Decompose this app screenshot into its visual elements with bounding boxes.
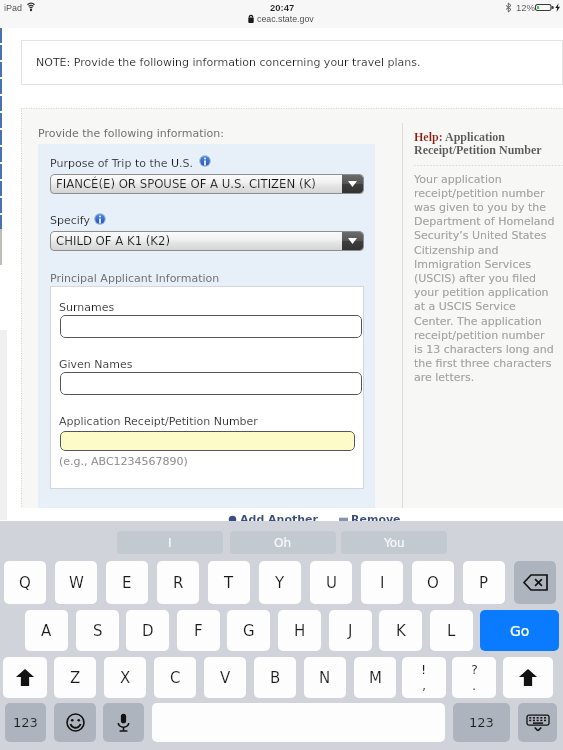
button[interactable]: A: [25, 610, 68, 651]
staticText: Application Receipt/Petition Number: [59, 415, 258, 428]
button[interactable]: S: [76, 610, 119, 651]
staticText: 20:47: [270, 2, 295, 13]
staticText: O: [427, 574, 439, 591]
button[interactable]: Y: [259, 561, 301, 604]
staticText: Surnames: [59, 301, 115, 314]
staticText: Your application: [414, 173, 502, 186]
button[interactable]: H: [278, 610, 321, 651]
button[interactable]: Emoji: [54, 703, 96, 742]
staticText: Specify: [50, 214, 91, 227]
staticText: Oh: [274, 536, 292, 550]
staticText: Provide the following information:: [38, 127, 224, 140]
staticText: D: [142, 622, 154, 639]
button[interactable]: P: [463, 561, 505, 604]
staticText: E: [122, 574, 132, 591]
button[interactable]: F: [177, 610, 220, 651]
staticText: Immigration Services: [414, 258, 531, 271]
staticText: at a USCIS Service: [414, 300, 516, 313]
staticText: CHILD OF A K1 (K2): [56, 234, 171, 248]
staticText: W: [69, 574, 84, 591]
staticText: receipt/petition number: [414, 329, 545, 342]
button[interactable]: NOTE: Provide the following information …: [21, 40, 563, 85]
button[interactable]: [60, 315, 362, 338]
button[interactable]: O: [412, 561, 454, 604]
button[interactable]: Question mark or period: [452, 657, 496, 698]
button[interactable]: U: [310, 561, 352, 604]
staticText: P: [479, 574, 489, 591]
button[interactable]: Backspace: [514, 561, 556, 604]
button[interactable]: Shift: [3, 657, 47, 698]
staticText: was given to you by the: [414, 201, 547, 214]
staticText: You: [384, 536, 405, 550]
button[interactable]: CHILD OF A K1 (K2): [50, 231, 364, 251]
button[interactable]: Go: [480, 610, 559, 651]
button[interactable]: C: [154, 657, 196, 698]
staticText: M: [369, 669, 382, 686]
staticText: is 13 characters long and: [414, 343, 554, 356]
staticText: ,: [422, 678, 427, 693]
staticText: Purpose of Trip to the U.S.: [50, 157, 194, 170]
button[interactable]: N: [304, 657, 346, 698]
staticText: F: [194, 622, 203, 639]
staticText: U: [326, 574, 337, 591]
staticText: .: [472, 678, 477, 693]
button[interactable]: E: [106, 561, 148, 604]
staticText: 123: [13, 715, 38, 730]
button[interactable]: Numbers: [5, 703, 46, 742]
button[interactable]: X: [104, 657, 146, 698]
staticText: NOTE: Provide the following information …: [36, 56, 421, 69]
staticText: K: [396, 622, 406, 639]
staticText: X: [120, 669, 131, 686]
button[interactable]: B: [254, 657, 296, 698]
button[interactable]: Dictate: [103, 703, 144, 742]
staticText: !: [421, 662, 427, 677]
button[interactable]: L: [430, 610, 473, 651]
staticText: 12%: [516, 2, 536, 13]
button[interactable]: W: [55, 561, 97, 604]
staticText: Department of Homeland: [414, 215, 555, 228]
button[interactable]: Shift: [503, 657, 553, 698]
staticText: 123: [469, 715, 494, 730]
button[interactable]: [60, 372, 362, 395]
staticText: G: [243, 622, 255, 639]
button[interactable]: K: [379, 610, 422, 651]
button[interactable]: Z: [54, 657, 96, 698]
staticText: I: [380, 574, 385, 591]
staticText: Add Another: [240, 513, 318, 526]
staticText: the first three characters: [414, 357, 552, 370]
staticText: S: [93, 622, 103, 639]
staticText: Remove: [351, 513, 401, 526]
staticText: N: [319, 669, 331, 686]
staticText: ceac.state.gov: [257, 14, 314, 24]
staticText: your petition application: [414, 286, 549, 299]
button[interactable]: You: [341, 531, 447, 554]
button[interactable]: T: [208, 561, 250, 604]
button[interactable]: J: [329, 610, 372, 651]
staticText: Q: [19, 574, 31, 591]
button[interactable]: Exclamation or comma: [402, 657, 446, 698]
staticText: Security’s United States: [414, 229, 547, 242]
button[interactable]: Q: [4, 561, 46, 604]
button[interactable]: V: [204, 657, 246, 698]
button[interactable]: M: [354, 657, 396, 698]
staticText: Center. The application: [414, 315, 542, 328]
staticText: Go: [510, 623, 530, 639]
staticText: (e.g., ABC1234567890): [59, 455, 188, 468]
button[interactable]: Oh: [230, 531, 336, 554]
button[interactable]: D: [126, 610, 169, 651]
staticText: ?: [471, 662, 478, 677]
button[interactable]: I: [117, 531, 223, 554]
button[interactable]: Hide keyboard: [518, 703, 557, 742]
button[interactable]: [60, 431, 355, 451]
button[interactable]: FIANCÉ(E) OR SPOUSE OF A U.S. CITIZEN (K…: [50, 174, 364, 194]
button[interactable]: I: [361, 561, 403, 604]
staticText: T: [224, 574, 234, 591]
staticText: J: [348, 622, 353, 639]
button[interactable]: R: [157, 561, 199, 604]
staticText: V: [220, 669, 231, 686]
staticText: B: [270, 669, 281, 686]
staticText: are letters.: [414, 371, 475, 384]
button[interactable]: G: [227, 610, 270, 651]
button[interactable]: Numbers: [453, 703, 510, 742]
